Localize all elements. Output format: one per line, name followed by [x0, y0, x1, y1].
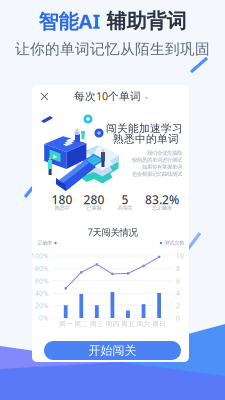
- staticText: 开始闯关: [88, 343, 136, 358]
- staticText: 0%: [39, 314, 49, 322]
- staticText: 辅助背词: [100, 9, 186, 33]
- staticText: 8: [176, 264, 180, 273]
- staticText: 较熟悉的单词进行测试: [132, 157, 182, 163]
- staticText: 83.2%: [145, 191, 179, 207]
- staticText: 周四: [105, 320, 119, 328]
- staticText: 如果你有掌握单词: [142, 164, 182, 170]
- staticText: 7天闯关情况: [87, 226, 137, 238]
- staticText: 周一: [59, 320, 73, 328]
- staticText: 闯关能加速学习: [106, 122, 183, 135]
- staticText: 180: [51, 191, 72, 207]
- staticText: 280: [83, 191, 104, 207]
- staticText: 共闯关: [117, 205, 132, 211]
- staticText: 2: [176, 301, 180, 310]
- staticText: 60%: [35, 276, 49, 285]
- staticText: 让你的单词记忆从陌生到巩固: [15, 40, 210, 58]
- staticText: 测试次数: [164, 240, 184, 246]
- staticText: 智能AI: [38, 8, 100, 34]
- staticText: 总正确率: [152, 205, 172, 211]
- staticText: ⌄: [143, 91, 150, 101]
- button[interactable]: Close: [38, 90, 51, 103]
- staticText: 正确率: [37, 240, 52, 246]
- staticText: 周三: [90, 320, 104, 328]
- staticText: 0: [176, 314, 180, 322]
- staticText: 100%: [31, 252, 49, 260]
- staticText: 已掌握: [86, 205, 101, 211]
- staticText: 周六: [137, 320, 151, 328]
- staticText: 周二: [74, 320, 88, 328]
- button[interactable]: 开始闯关: [44, 341, 181, 360]
- staticText: 80%: [35, 264, 49, 273]
- staticText: 40%: [35, 289, 49, 298]
- staticText: 4: [176, 289, 180, 298]
- staticText: 周五: [121, 320, 135, 328]
- staticText: 20%: [35, 301, 49, 310]
- staticText: 我们会优先抽取: [147, 150, 182, 156]
- staticText: 也会根据记忆曲线测试: [132, 171, 182, 177]
- staticText: 10: [176, 252, 184, 260]
- staticText: 熟悉中的单词: [113, 132, 179, 145]
- staticText: 周日: [152, 320, 166, 328]
- button[interactable]: 每次10个单词: [74, 89, 150, 103]
- staticText: 熟悉中: [54, 205, 69, 211]
- staticText: 6: [176, 276, 180, 285]
- staticText: 5: [121, 191, 128, 207]
- staticText: 每次10个单词: [74, 89, 141, 103]
